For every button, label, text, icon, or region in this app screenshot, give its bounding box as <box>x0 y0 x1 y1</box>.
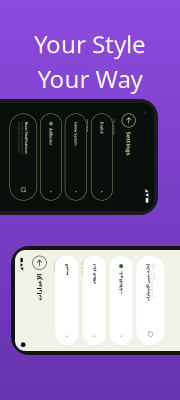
staticText: مانع الإعلانات <box>160 272 180 294</box>
button[interactable]: Reset Notifications <box>0 158 180 295</box>
button[interactable]: مانع الإعلانات <box>0 221 180 344</box>
staticText: Reset Notifications <box>0 200 21 223</box>
button[interactable]: العربية <box>0 0 180 51</box>
button[interactable]: AdBlocker <box>0 33 180 141</box>
staticText: This will reset and reschedule all notif… <box>0 225 25 253</box>
staticText: Your Style <box>34 28 146 60</box>
button[interactable]: اتباع النظام <box>0 77 180 200</box>
staticText: Your Way <box>37 63 142 95</box>
